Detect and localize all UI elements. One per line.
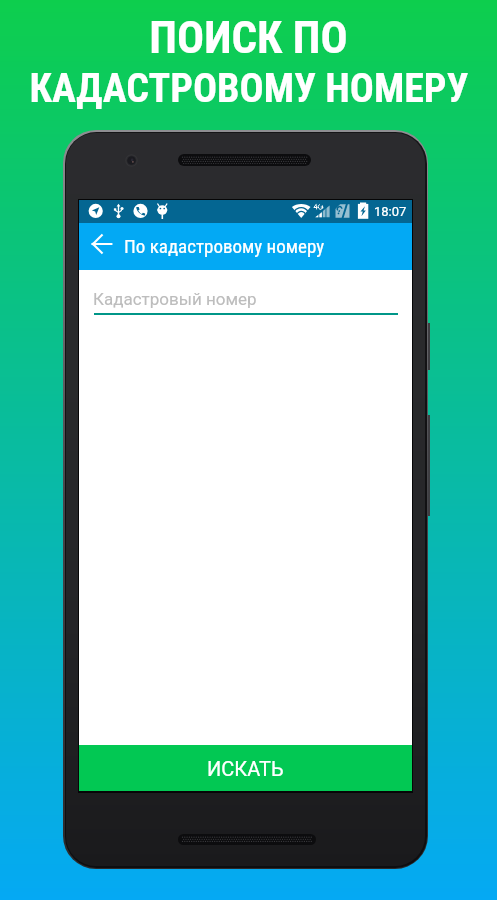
button[interactable]: ИСКАТЬ — [79, 745, 412, 791]
staticText: По кадастровому номеру — [124, 235, 325, 257]
staticText: КАДАСТРОВОМУ НОМЕРУ — [29, 65, 469, 112]
button[interactable]: Кадастровый номер — [94, 282, 398, 315]
staticText: 18:07 — [374, 204, 407, 219]
staticText: Кадастровый номер — [93, 289, 257, 309]
button[interactable]: Back — [82, 223, 124, 265]
staticText: ПОИСК ПО — [149, 11, 348, 64]
staticText: ИСКАТЬ — [207, 757, 284, 780]
